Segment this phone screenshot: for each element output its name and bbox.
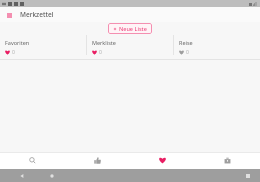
button[interactable]: Neue Liste: [108, 23, 152, 34]
staticText: Merkliste: [92, 39, 116, 46]
staticText: 0: [99, 49, 102, 56]
staticText: Reise: [179, 39, 193, 46]
staticText: 0: [186, 49, 189, 56]
staticText: 0: [12, 49, 15, 56]
button[interactable]: Search: [0, 152, 65, 169]
button[interactable]: Home: [48, 172, 56, 180]
button[interactable]: Bag: [195, 152, 260, 169]
staticText: Merkzettel: [20, 10, 54, 19]
button[interactable]: Menu: [6, 12, 12, 18]
staticText: Neue Liste: [119, 25, 147, 32]
staticText: Favoriten: [5, 39, 30, 46]
button[interactable]: Recommendations: [65, 152, 130, 169]
button[interactable]: Reise: [174, 35, 260, 59]
button[interactable]: Recent apps: [244, 172, 252, 180]
button[interactable]: Favourites: [130, 152, 195, 169]
button[interactable]: Favoriten: [0, 35, 86, 59]
button[interactable]: Back: [18, 172, 26, 180]
button[interactable]: Merkliste: [87, 35, 173, 59]
